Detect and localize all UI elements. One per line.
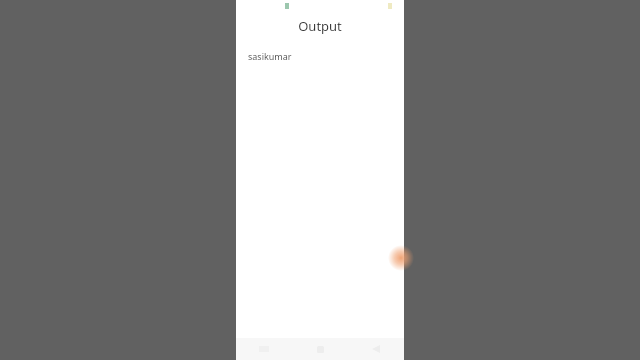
button[interactable]: sasikumar (248, 50, 292, 62)
staticText: Output (298, 17, 342, 35)
